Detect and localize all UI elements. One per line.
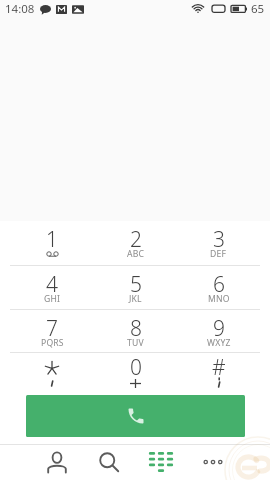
staticText: 6 [213, 270, 225, 299]
staticText: WXYZ [207, 337, 231, 349]
staticText: PQRS [41, 337, 64, 349]
staticText: 65 [251, 1, 265, 17]
button[interactable]: 7 [10, 310, 94, 352]
button[interactable]: 5 [94, 266, 177, 309]
button[interactable]: 0 [94, 353, 177, 395]
staticText: 4 [46, 270, 58, 299]
staticText: # [212, 353, 226, 382]
staticText: 2 [130, 225, 142, 254]
staticText: 5 [130, 270, 142, 299]
button[interactable]: Keypad [135, 445, 187, 480]
button[interactable]: 1 [10, 221, 94, 265]
button[interactable]: 6 [177, 266, 260, 309]
staticText: GHI [44, 293, 61, 305]
button[interactable]: Contacts [31, 445, 83, 480]
staticText: TUV [127, 337, 144, 349]
staticText: 9 [213, 314, 225, 343]
button[interactable]: Call [26, 395, 245, 437]
staticText: 3 [213, 225, 225, 254]
staticText: MNO [208, 293, 230, 305]
staticText: 14:08 [5, 1, 35, 17]
staticText: 7 [46, 314, 58, 343]
button[interactable]: 2 [94, 221, 177, 265]
button[interactable]: 3 [177, 221, 260, 265]
staticText: 1 [46, 225, 58, 254]
staticText: 8 [130, 314, 142, 343]
button[interactable]: 8 [94, 310, 177, 352]
button[interactable]: Search [83, 445, 135, 480]
button[interactable]: 4 [10, 266, 94, 309]
button[interactable]: # [177, 353, 260, 395]
button[interactable] [10, 353, 94, 395]
staticText: 0 [130, 353, 142, 382]
staticText: DEF [210, 248, 227, 260]
button[interactable]: More [187, 445, 239, 480]
staticText: JKL [129, 293, 142, 305]
staticText: ABC [127, 248, 145, 260]
button[interactable]: 9 [177, 310, 260, 352]
